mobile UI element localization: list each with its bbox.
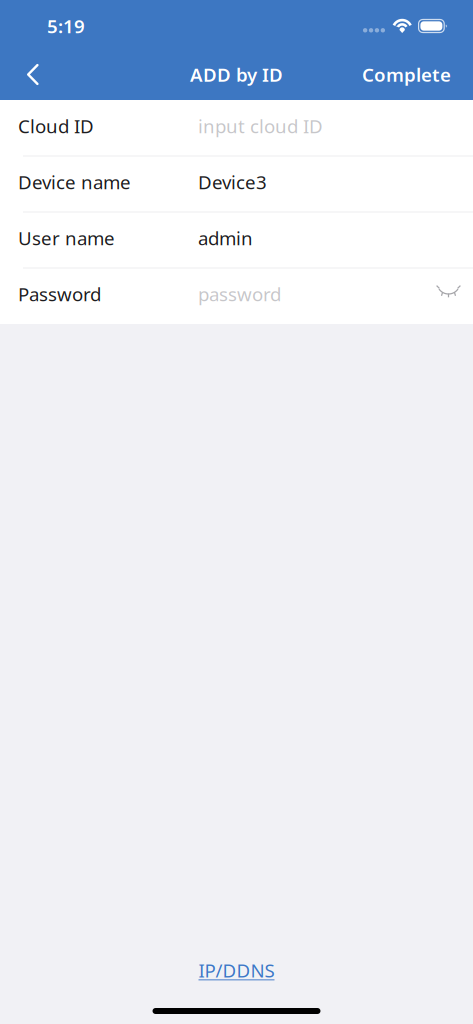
button[interactable]: Back xyxy=(0,52,50,97)
button[interactable]: IP/DDNS xyxy=(188,952,284,989)
staticText: Complete xyxy=(362,62,451,87)
staticText: User name xyxy=(18,225,115,251)
staticText: Password xyxy=(18,281,101,307)
button[interactable]: Show password xyxy=(429,268,468,323)
staticText: Device name xyxy=(18,169,131,195)
staticText: Cloud ID xyxy=(18,113,94,139)
staticText: ADD by ID xyxy=(190,62,283,87)
staticText: input cloud ID xyxy=(198,113,323,139)
staticText: Device3 xyxy=(198,169,267,195)
button[interactable]: Password xyxy=(0,268,429,323)
staticText: IP/DDNS xyxy=(198,958,274,983)
staticText: 5:19 xyxy=(47,13,85,39)
staticText: password xyxy=(198,281,281,307)
button[interactable]: User name xyxy=(0,212,468,267)
button[interactable]: Device name xyxy=(0,156,468,211)
button[interactable]: Complete xyxy=(346,50,473,99)
staticText: admin xyxy=(198,225,253,251)
button[interactable]: Cloud ID xyxy=(0,100,468,155)
